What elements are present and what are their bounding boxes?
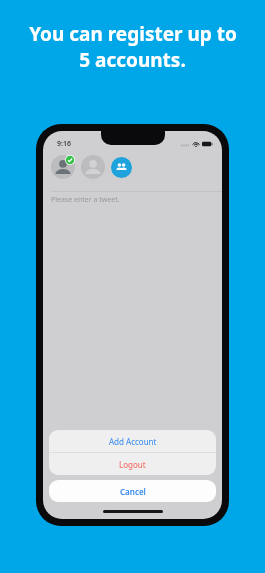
button[interactable]: Account bbox=[81, 155, 105, 179]
staticText: Please enter a tweet. bbox=[51, 195, 120, 205]
staticText: You can register up to bbox=[29, 21, 237, 47]
staticText: Logout bbox=[119, 459, 146, 470]
staticText: Add Account bbox=[109, 436, 157, 447]
button[interactable]: Add account bbox=[111, 157, 132, 178]
button[interactable]: Cancel bbox=[49, 480, 216, 502]
button[interactable]: Add Account bbox=[49, 430, 216, 452]
button[interactable]: Selected account bbox=[51, 155, 75, 179]
button[interactable]: Logout bbox=[49, 453, 216, 475]
staticText: 5 accounts. bbox=[79, 47, 186, 73]
staticText: Cancel bbox=[120, 486, 146, 497]
staticText: 9:16 bbox=[57, 139, 71, 149]
